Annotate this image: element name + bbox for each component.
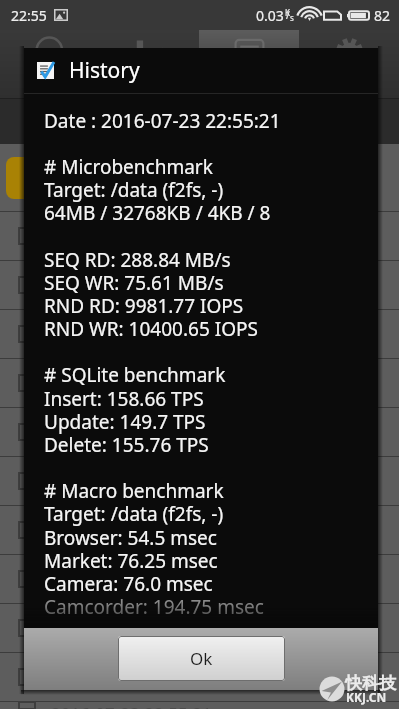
staticText: K [285, 7, 290, 18]
staticText: Measure [23, 70, 77, 88]
staticText: History [69, 56, 140, 85]
staticText: Market: 76.25 msec [44, 548, 218, 574]
staticText: # Macro benchmark [44, 478, 224, 504]
staticText: 64MB / 32768KB / 4KB / 8 [44, 200, 271, 226]
staticText: Camera: 76.0 msec [44, 571, 213, 597]
button[interactable]: 2016-07-23 22:55:21 [0, 506, 399, 554]
staticText: Target: /data (f2fs, -) [44, 177, 224, 203]
staticText: Update: 149.7 TPS [44, 409, 206, 435]
staticText: 22:55 [11, 6, 47, 25]
staticText: 2016-07-23 22:55:21 [51, 568, 212, 591]
staticText: # Microbenchmark [44, 154, 213, 180]
staticText: Target: /data (f2fs, -) [44, 501, 224, 527]
staticText: 2016-07-23 22:55:21 [51, 519, 212, 542]
staticText: Delete: 155.76 TPS [44, 432, 209, 458]
staticText: KKJ.CN [346, 689, 387, 705]
staticText: SEQ WR: 75.61 MB/s [44, 270, 224, 296]
button[interactable]: Ok [118, 636, 285, 681]
button[interactable]: 2016-07-23 22:55:21 [0, 310, 399, 358]
button[interactable]: 2016-07-23 22:55:21 [0, 653, 399, 701]
staticText: 2016-07-23 22:55:21 [51, 702, 212, 709]
button[interactable]: History [199, 30, 299, 98]
button[interactable]: 2016-07-23 22:55:21 [0, 261, 399, 309]
button[interactable]: 2016-07-23 22:55:21 [0, 408, 399, 456]
staticText: SEQ RD: 288.84 MB/s [44, 247, 231, 273]
staticText: 0.03 [256, 6, 284, 25]
button[interactable]: 2016-07-23 22:55:21 [0, 702, 399, 709]
staticText: Results [127, 70, 171, 88]
button[interactable]: 2016-07-23 22:55:21 [0, 359, 399, 407]
staticText: 2016-07-23 22:55:21 [51, 323, 212, 346]
button[interactable]: 2016-07-23 22:55:21 [0, 212, 399, 260]
staticText: # SQLite benchmark [44, 362, 226, 388]
button[interactable]: 2016-07-23 22:55:21 [0, 457, 399, 505]
staticText: 82 [374, 6, 391, 25]
button[interactable]: Clear history [0, 144, 399, 211]
staticText: RND WR: 10400.65 IOPS [44, 316, 258, 342]
staticText: Camcorder: 194.75 msec [44, 594, 264, 620]
staticText: / [286, 8, 290, 22]
staticText: s [290, 12, 294, 23]
button[interactable]: 2016-07-23 22:55:21 [0, 604, 399, 652]
staticText: Clear history [57, 166, 158, 189]
staticText: Insert: 158.66 TPS [44, 386, 204, 412]
staticText: RND RD: 9981.77 IOPS [44, 293, 244, 319]
staticText: Date : 2016-07-23 22:55:21 [44, 108, 281, 134]
staticText: 2016-07-23 22:55:21 [51, 470, 212, 493]
staticText: Ok [190, 647, 213, 670]
staticText: AndroBench [34, 102, 133, 125]
staticText: Storage Benchmarking Tool [34, 125, 190, 141]
staticText: Browser: 54.5 msec [44, 525, 217, 551]
staticText: 2016-07-23 22:55:21 [51, 421, 212, 444]
staticText: 快科技 [345, 673, 396, 694]
staticText: 2016-07-23 22:55:21 [51, 666, 212, 689]
button[interactable]: 2016-07-23 22:55:21 [0, 555, 399, 603]
button[interactable]: Setting [299, 30, 399, 98]
staticText: 2016-07-23 22:55:21 [51, 617, 212, 640]
button[interactable]: Measure [0, 30, 99, 98]
button[interactable]: Results [99, 30, 199, 98]
staticText: 2016-07-23 22:55:21 [51, 372, 212, 395]
staticText: 2016-07-23 22:55:21 [51, 274, 212, 297]
